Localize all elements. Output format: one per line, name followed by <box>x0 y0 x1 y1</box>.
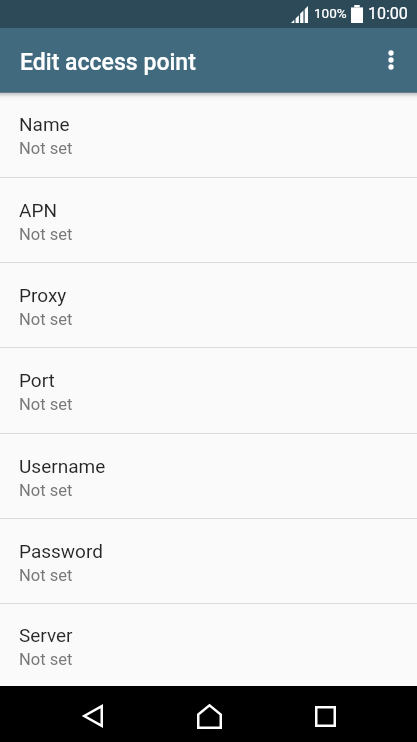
staticText: Not set <box>19 566 73 585</box>
staticText: Password <box>19 540 103 562</box>
button[interactable]: Server <box>0 604 417 686</box>
staticText: 100% <box>314 5 347 21</box>
staticText: Name <box>19 113 70 135</box>
button[interactable]: Recent apps <box>289 686 361 742</box>
staticText: Proxy <box>19 284 67 306</box>
button[interactable]: Proxy <box>0 263 417 347</box>
staticText: Port <box>19 369 55 391</box>
button[interactable]: Name <box>0 92 417 177</box>
staticText: Not set <box>19 481 73 500</box>
button[interactable]: Password <box>0 519 417 603</box>
staticText: 10:00 <box>368 4 408 23</box>
staticText: Not set <box>19 395 73 414</box>
staticText: Not set <box>19 310 73 329</box>
button[interactable]: Username <box>0 434 417 518</box>
staticText: Not set <box>19 139 73 158</box>
staticText: Not set <box>19 225 73 244</box>
button[interactable]: Home <box>173 686 245 742</box>
button[interactable]: Back <box>57 686 129 742</box>
staticText: Edit access point <box>20 49 196 76</box>
staticText: Server <box>19 624 73 646</box>
button[interactable]: APN <box>0 178 417 262</box>
staticText: Username <box>19 455 106 477</box>
staticText: Not set <box>19 650 73 669</box>
staticText: APN <box>19 199 57 221</box>
button[interactable]: More options <box>365 28 417 92</box>
button[interactable]: Port <box>0 348 417 433</box>
